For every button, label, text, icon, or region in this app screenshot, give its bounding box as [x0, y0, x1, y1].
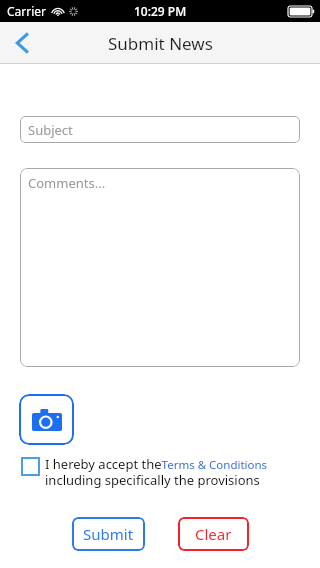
staticText: Carrier — [7, 3, 47, 19]
staticText: Submit — [83, 524, 134, 544]
staticText: Subject — [28, 121, 73, 139]
staticText: I hereby accept theTerms & Conditions — [45, 455, 268, 473]
button[interactable]: Submit — [72, 517, 145, 551]
staticText: including specifically the provisions — [45, 471, 260, 489]
staticText: 10:29 PM — [134, 3, 187, 19]
staticText: Clear — [195, 524, 232, 544]
button[interactable]: Subject — [20, 116, 300, 143]
button[interactable]: Back — [0, 22, 44, 64]
button[interactable]: Clear — [178, 517, 249, 551]
button[interactable]: Take photo — [19, 394, 74, 445]
button[interactable]: Comments... — [20, 168, 300, 367]
button[interactable]: Accept terms checkbox — [21, 457, 40, 476]
staticText: Submit News — [108, 32, 213, 55]
staticText: Comments... — [28, 174, 106, 192]
button[interactable]: I hereby accept theTerms & Conditions — [45, 455, 315, 473]
